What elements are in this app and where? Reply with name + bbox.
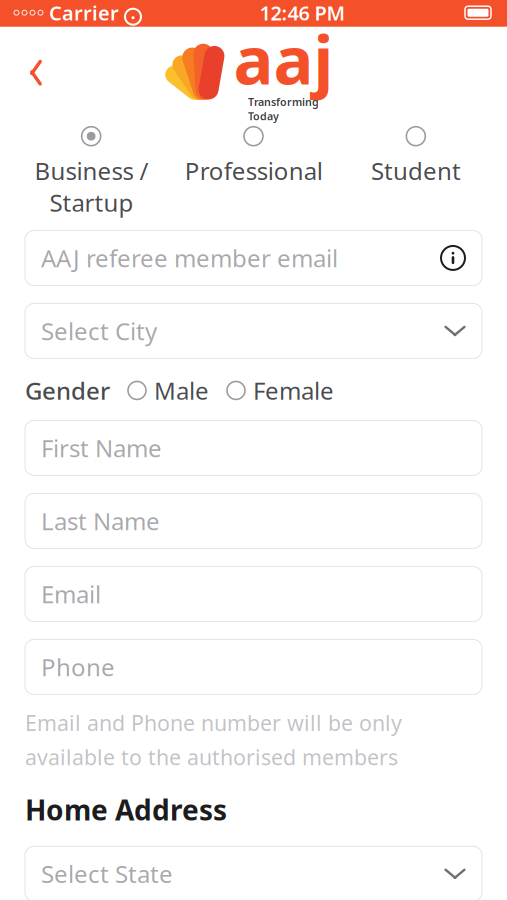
staticText: aaj (233, 14, 333, 103)
button[interactable]: Male (128, 374, 209, 406)
staticText: Select City (41, 315, 157, 347)
staticText: 12:46 PM (259, 0, 345, 26)
button[interactable]: Email (25, 566, 482, 621)
staticText: Student (371, 155, 461, 187)
button[interactable]: AAJ referee member email (25, 230, 482, 285)
staticText: First Name (41, 432, 162, 464)
button[interactable]: First Name (25, 420, 482, 475)
staticText: Female (253, 374, 334, 406)
staticText: Phone (41, 651, 115, 683)
staticText: Last Name (41, 505, 160, 537)
staticText: Male (154, 374, 209, 406)
button[interactable]: Student (335, 125, 497, 189)
button[interactable]: Last Name (25, 493, 482, 548)
staticText: Business / Startup (34, 155, 148, 218)
staticText: Select State (41, 858, 173, 890)
button[interactable]: Select State (25, 846, 482, 900)
staticText: Carrier (49, 0, 119, 26)
staticText: AAJ referee member email (41, 242, 338, 274)
staticText: Transforming Today (248, 95, 319, 123)
button[interactable]: Business / Startup (10, 125, 172, 220)
staticText: Gender (25, 374, 110, 406)
button[interactable]: Select City (25, 303, 482, 358)
button[interactable]: Female (227, 374, 334, 406)
staticText: Professional (184, 155, 322, 187)
button[interactable]: Phone (25, 639, 482, 694)
staticText: Email and Phone number will be only avai… (25, 708, 402, 771)
staticText: Home Address (25, 791, 227, 828)
staticText: Email (41, 578, 101, 610)
button[interactable]: Back (14, 51, 58, 95)
button[interactable]: Professional (172, 125, 335, 189)
